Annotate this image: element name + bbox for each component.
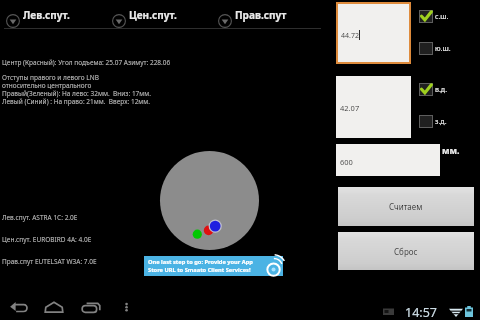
button[interactable]: Сброс: [338, 232, 474, 270]
button[interactable]: Считаем: [338, 187, 474, 226]
staticText: мм.: [442, 144, 460, 156]
staticText: Лев.спут. ASTRA 1C: 2.0E: [2, 213, 78, 222]
staticText: 44.72: [341, 31, 359, 41]
staticText: с.ш.: [435, 12, 449, 22]
staticText: 14:57: [405, 304, 437, 320]
button[interactable]: Лев.спут.: [0, 0, 106, 28]
button[interactable]: с.ш.: [419, 10, 449, 23]
staticText: Цен.спут.: [129, 8, 177, 22]
button[interactable]: ю.ш.: [419, 42, 451, 55]
button[interactable]: 600: [336, 144, 440, 176]
button[interactable]: One last step to go: Provide your App St…: [144, 256, 283, 276]
staticText: Считаем: [389, 201, 423, 212]
staticText: в.д.: [435, 85, 448, 95]
staticText: Прав.спут: [235, 8, 287, 22]
staticText: Отступы правого и левого LNB относительн…: [2, 73, 152, 106]
button[interactable]: в.д.: [419, 83, 448, 96]
staticText: Сброс: [394, 246, 418, 257]
button[interactable]: More options: [119, 298, 137, 316]
button[interactable]: Прав.спут: [212, 0, 318, 28]
staticText: One last step to go: Provide your App St…: [148, 258, 253, 274]
staticText: Центр (Красный): Угол подъема: 25.07 Ази…: [2, 58, 171, 67]
staticText: ю.ш.: [435, 44, 451, 54]
staticText: Лев.спут.: [23, 8, 70, 22]
staticText: 42.07: [340, 103, 360, 113]
button[interactable]: Цен.спут.: [106, 0, 212, 28]
button[interactable]: 44.72: [338, 4, 409, 62]
staticText: Цен.спут. EUROBIRD 4A: 4.0E: [2, 235, 92, 244]
staticText: Прав.спут EUTELSAT W3A: 7.0E: [2, 257, 97, 266]
button[interactable]: з.д.: [419, 115, 447, 128]
button[interactable]: Back: [7, 298, 31, 316]
button[interactable]: Home: [44, 298, 64, 316]
button[interactable]: Recents: [81, 298, 101, 316]
button[interactable]: 42.07: [336, 76, 411, 138]
staticText: 600: [340, 157, 353, 167]
staticText: з.д.: [435, 117, 447, 127]
